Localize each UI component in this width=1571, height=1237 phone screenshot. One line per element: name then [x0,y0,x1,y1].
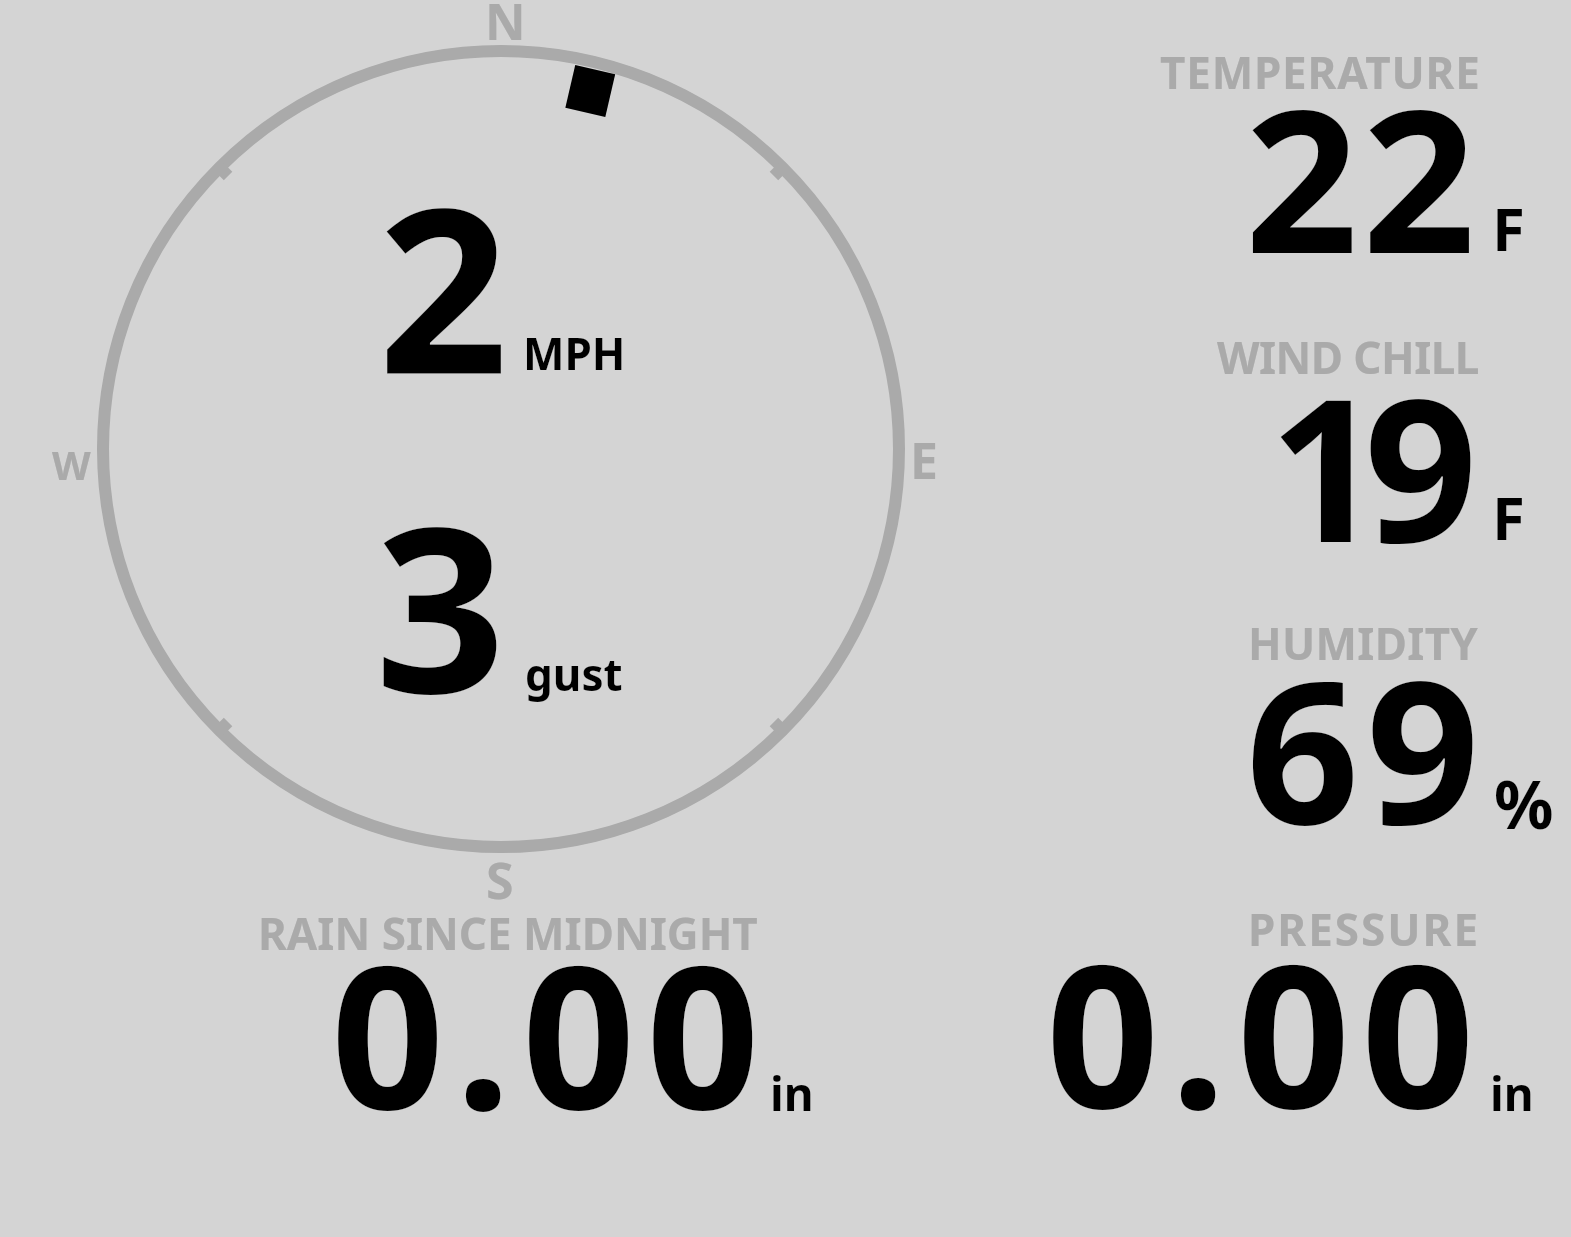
staticText: 3 [375,449,506,760]
staticText: TEMPERATURE [1160,42,1481,102]
staticText: RAIN SINCE MIDNIGHT [258,903,758,963]
staticText: MPH [523,323,626,383]
staticText: 69 [1246,612,1487,872]
staticText: 2 [378,130,509,441]
button[interactable]: Humidity 69 percent [1120,600,1571,860]
staticText: 22 [1245,41,1480,301]
staticText: N [485,0,526,55]
staticText: E [910,426,938,494]
staticText: S [486,846,514,914]
staticText: 0.00 [1046,896,1486,1131]
staticText: WIND CHILL [1217,327,1479,387]
button[interactable]: Pressure 0.00 inches [930,895,1571,1130]
staticText: F [1492,187,1525,269]
staticText: in [1490,1062,1534,1125]
staticText: 19 [1269,330,1460,590]
staticText: HUMIDITY [1248,613,1479,673]
staticText: % [1494,758,1554,848]
button[interactable]: Rain since midnight 0.00 inches [190,895,840,1130]
button[interactable]: Wind chill 19 degrees Fahrenheit [1120,315,1571,575]
staticText: W [52,437,91,491]
staticText: in [770,1062,814,1125]
staticText: 0.00 [331,897,771,1132]
staticText: PRESSURE [1248,899,1481,959]
staticText: F [1492,476,1525,558]
button[interactable]: Wind direction north-northeast, 2 MPH, g… [97,45,905,853]
button[interactable]: Temperature 22 degrees Fahrenheit [1120,30,1571,290]
staticText: gust [525,644,623,704]
